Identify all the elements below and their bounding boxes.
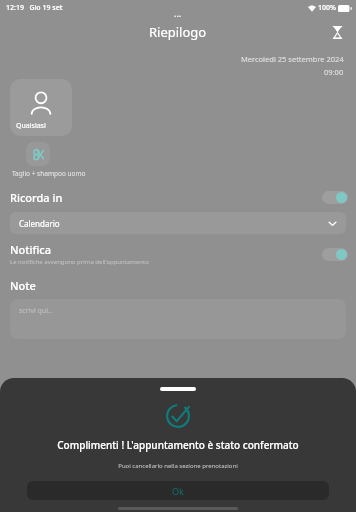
staticText: ... bbox=[174, 7, 182, 19]
staticText: Mercoledì 25 settembre 2024 bbox=[241, 54, 344, 64]
button[interactable]: Cronologia bbox=[326, 21, 348, 43]
staticText: Qualsiasi bbox=[16, 121, 46, 131]
button[interactable]: Calendario bbox=[10, 212, 346, 234]
button[interactable]: Ricorda in bbox=[322, 191, 348, 204]
staticText: scrivi qui.. bbox=[19, 306, 52, 316]
staticText: Puoi cancellarlo nella sezione prenotazi… bbox=[118, 462, 238, 470]
staticText: Notifica bbox=[10, 242, 52, 257]
button[interactable]: Notifica bbox=[0, 240, 356, 268]
staticText: Calendario bbox=[19, 218, 328, 229]
staticText: 12:19 Gio 19 set bbox=[6, 3, 63, 13]
button[interactable]: Servizio bbox=[26, 142, 50, 166]
button[interactable]: Ricorda in bbox=[0, 188, 356, 207]
button[interactable]: Ok bbox=[27, 481, 329, 500]
staticText: Le notifiche avvengono prima dell'appunt… bbox=[10, 258, 149, 266]
staticText: Taglio + shampoo uomo bbox=[12, 169, 86, 178]
staticText: 100% bbox=[318, 3, 336, 13]
staticText: Complimenti ! L'appuntamento è stato con… bbox=[57, 438, 299, 452]
staticText: Ok bbox=[172, 485, 184, 497]
staticText: 09:00 bbox=[324, 67, 344, 77]
staticText: Note bbox=[10, 278, 36, 293]
button[interactable]: Qualsiasi bbox=[10, 79, 72, 136]
staticText: Ricorda in bbox=[10, 190, 63, 205]
staticText: Riepilogo bbox=[149, 23, 207, 41]
button[interactable]: Notifica bbox=[322, 248, 348, 261]
